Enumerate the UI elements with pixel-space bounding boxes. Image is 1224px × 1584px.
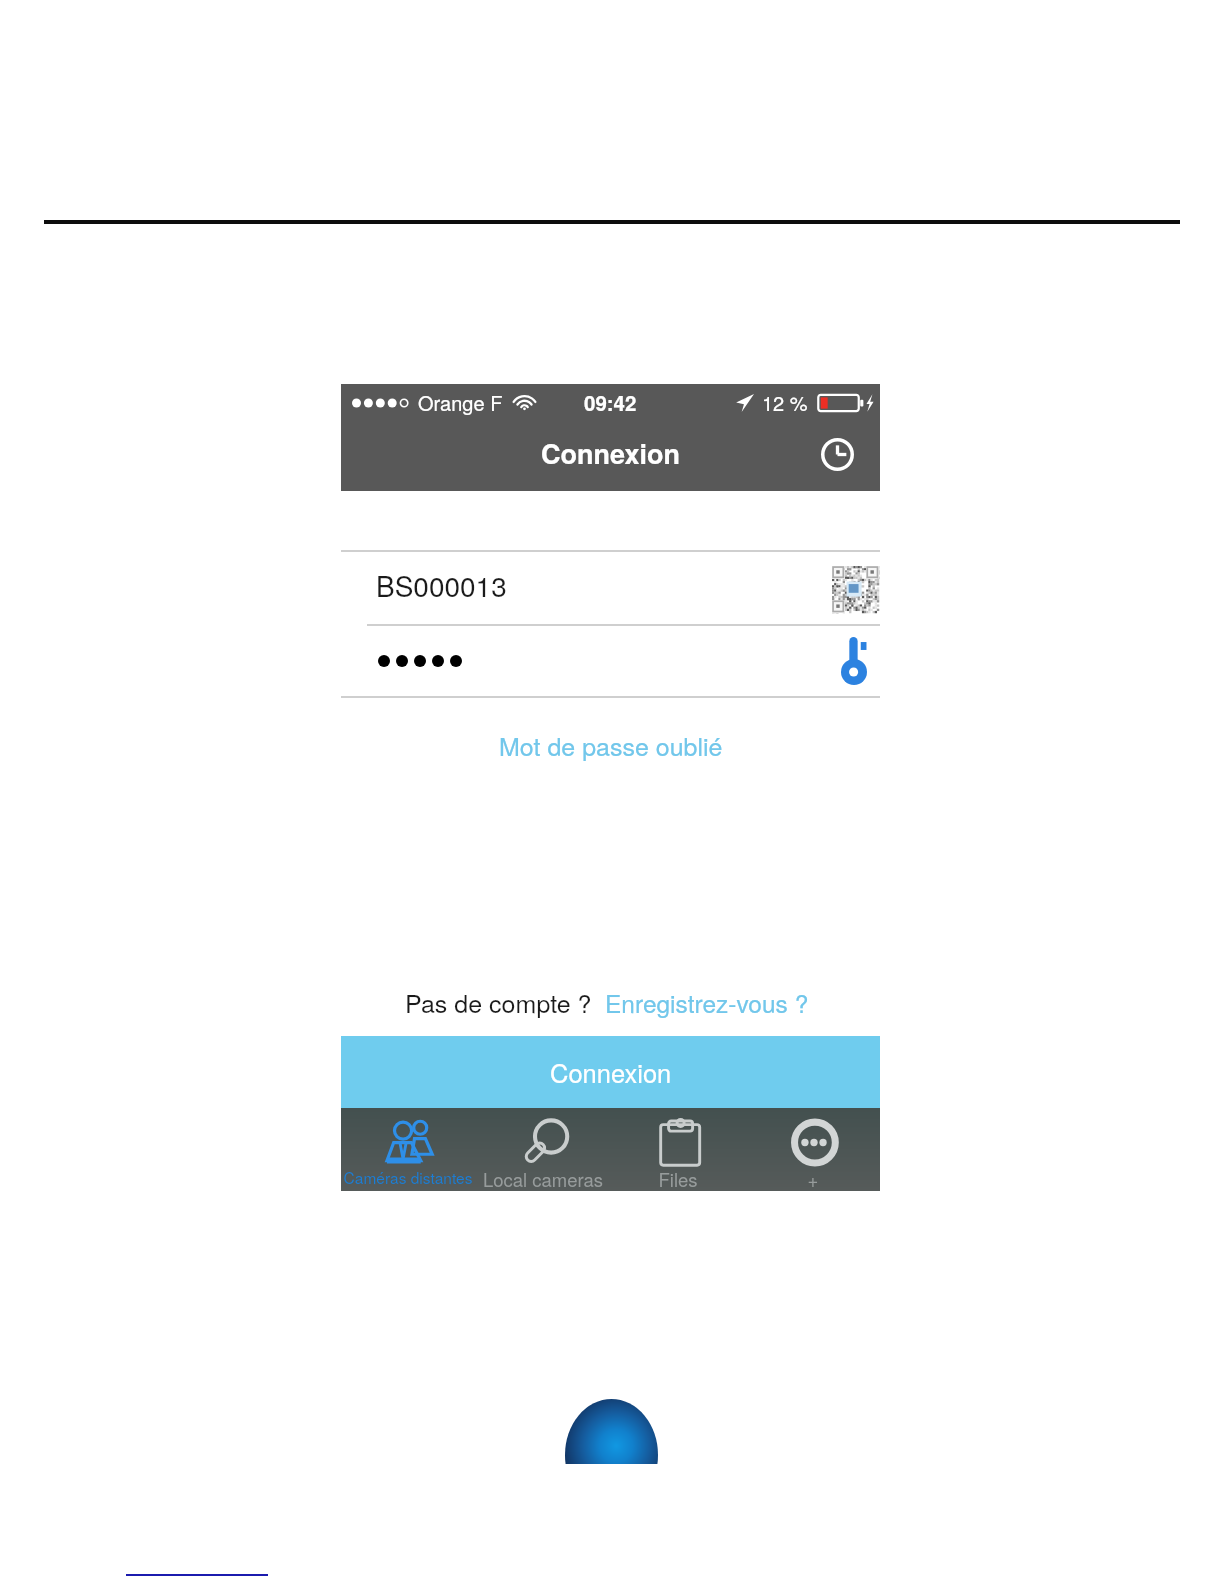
staticText: Local cameras: [433, 1166, 653, 1192]
button[interactable]: Enregistrez-vous ?: [605, 985, 809, 1020]
staticText: 09:42: [584, 388, 637, 417]
staticText: 12 %: [762, 388, 808, 417]
button[interactable]: History: [815, 432, 859, 476]
staticText: +: [703, 1166, 923, 1192]
staticText: Connexion: [541, 434, 680, 473]
button[interactable]: Add: [745, 1108, 880, 1191]
staticText: Files: [568, 1166, 788, 1192]
button[interactable]: BS000013: [341, 552, 880, 624]
staticText: Pas de compte ?: [405, 984, 592, 1020]
staticText: Caméras distantes: [298, 1166, 518, 1188]
button[interactable]: Mot de passe oublié: [341, 719, 880, 771]
staticText: Connexion: [550, 1054, 672, 1091]
button[interactable]: Files: [610, 1108, 745, 1191]
button[interactable]: [341, 626, 880, 696]
button[interactable]: Connexion: [341, 1036, 880, 1108]
button[interactable]: Local cameras: [475, 1108, 610, 1191]
staticText: Orange F: [418, 388, 503, 417]
button[interactable]: Caméras distantes: [341, 1108, 475, 1191]
staticText: Enregistrez-vous ?: [605, 985, 809, 1020]
staticText: Mot de passe oublié: [499, 727, 723, 763]
staticText: BS000013: [376, 565, 507, 605]
